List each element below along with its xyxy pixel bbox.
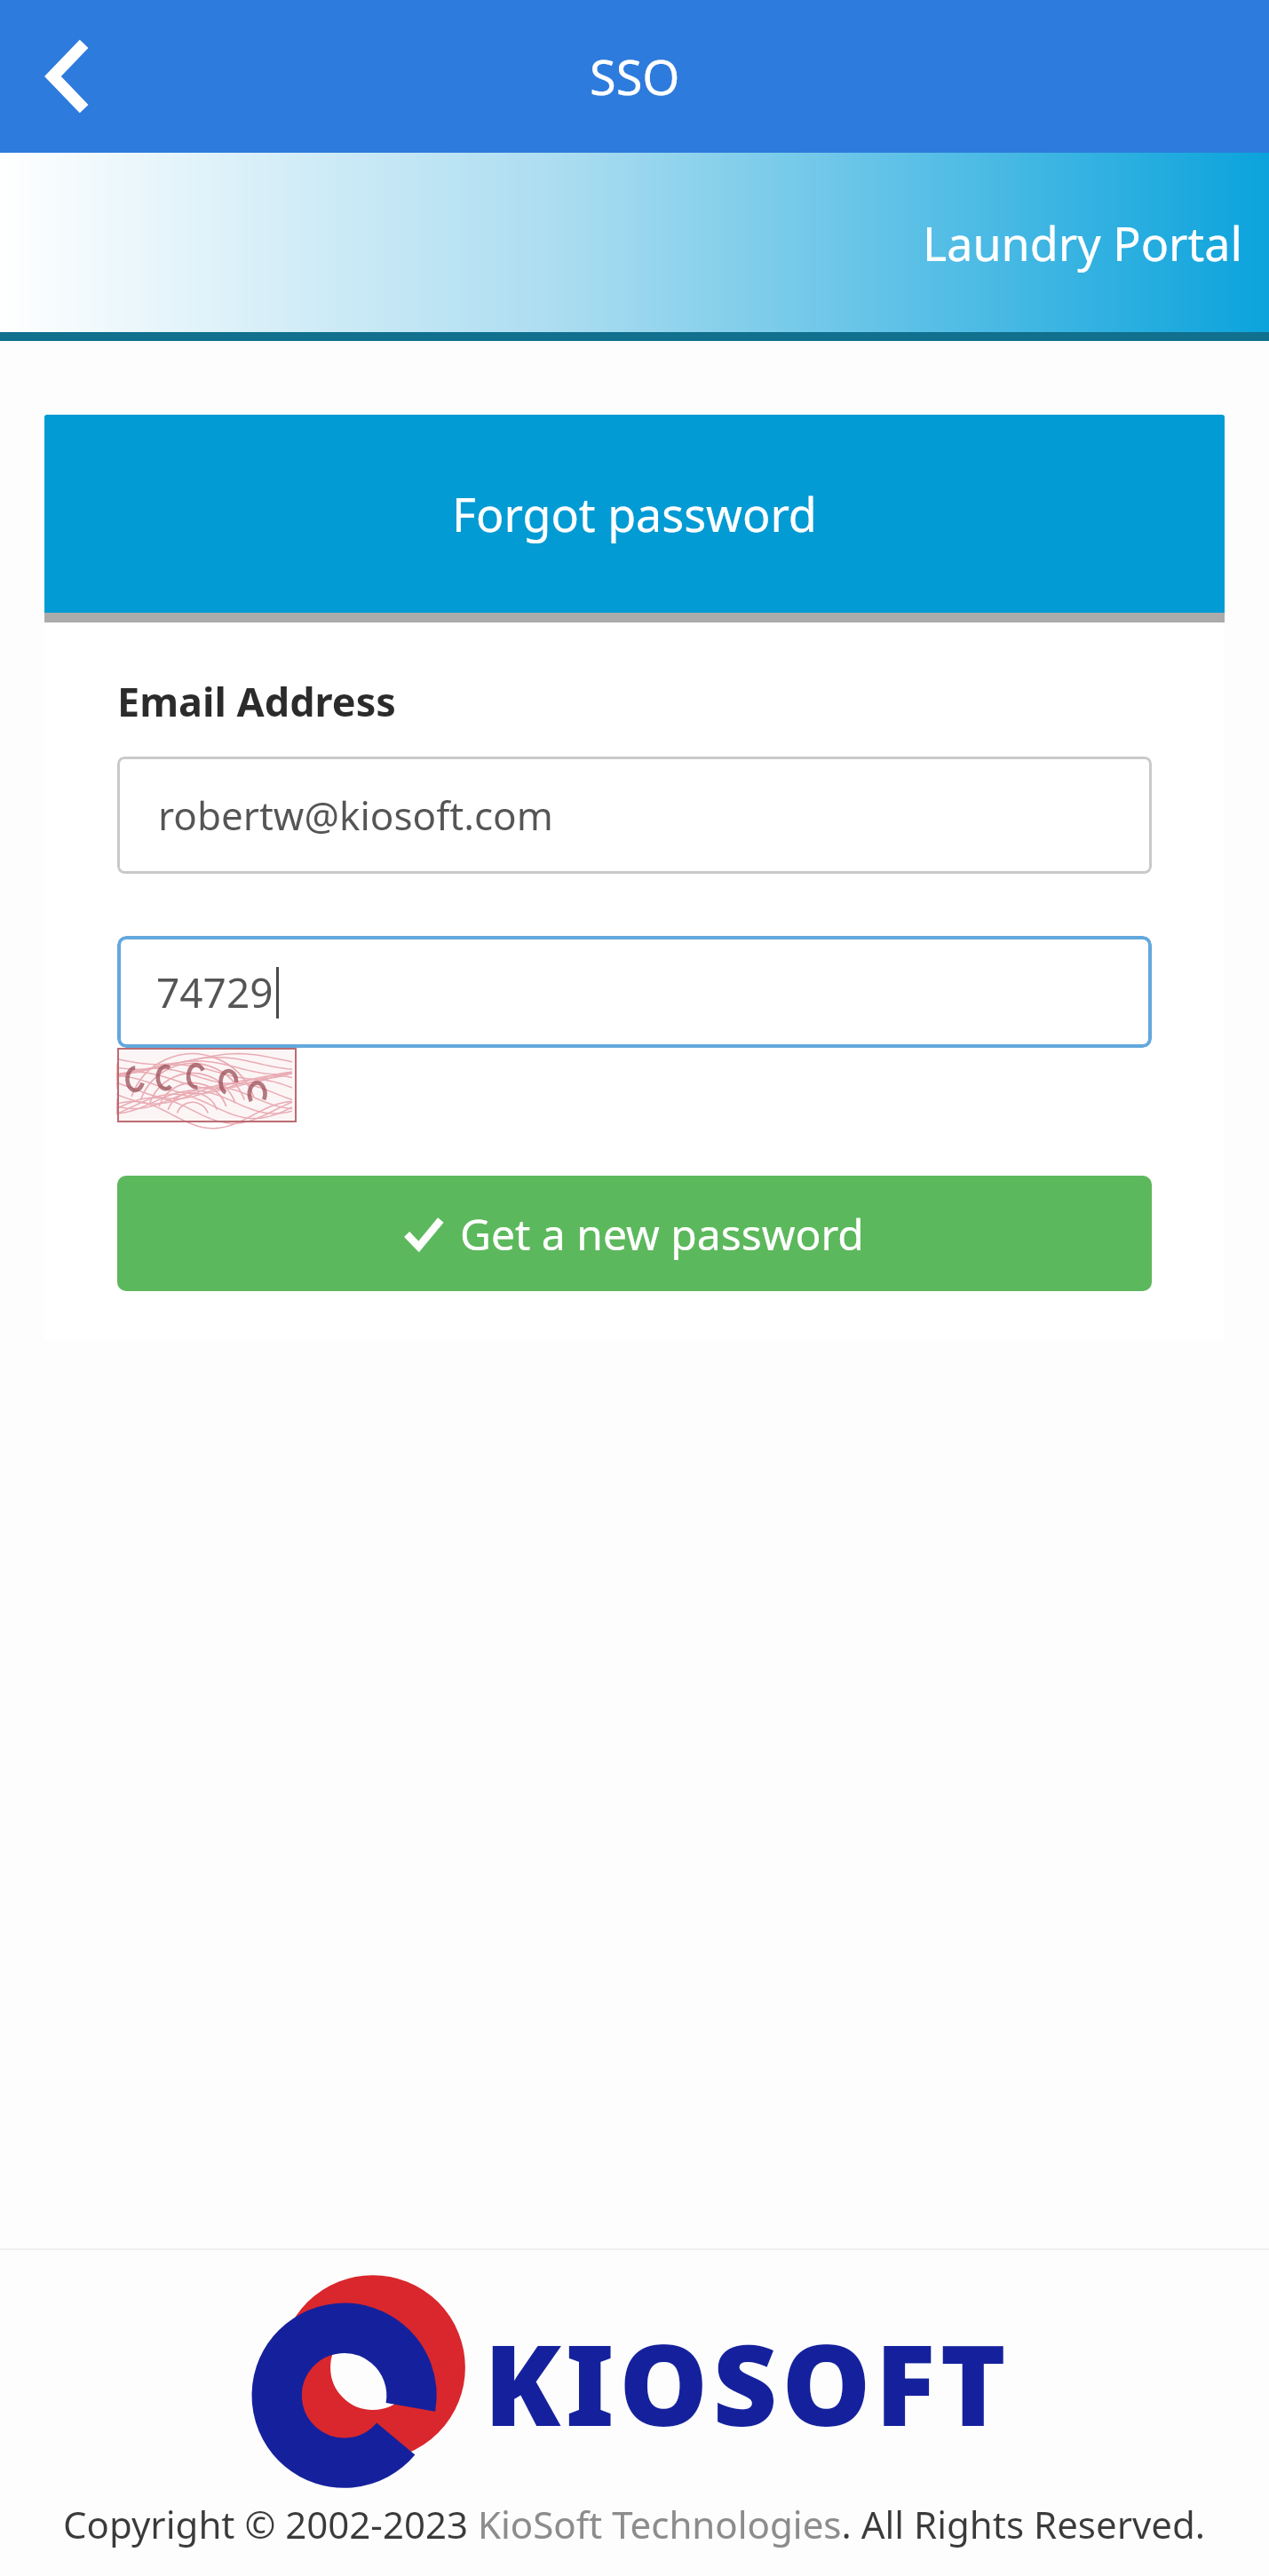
staticText: robertw@kiosoft.com xyxy=(158,789,553,842)
staticText: Copyright © 2002-2023 KioSoft Technologi… xyxy=(63,2499,1206,2549)
button[interactable]: robertw@kiosoft.com xyxy=(117,757,1152,874)
staticText: SSO xyxy=(590,44,680,109)
button[interactable]: Back xyxy=(14,19,121,134)
staticText: Email Address xyxy=(117,674,396,728)
button[interactable]: Get a new password xyxy=(117,1176,1152,1291)
staticText: Get a new password xyxy=(460,1205,864,1263)
staticText: Forgot password xyxy=(452,482,817,545)
staticText: Laundry Portal xyxy=(923,211,1242,274)
button[interactable]: 74729 xyxy=(117,936,1152,1048)
staticText: KIOSOFT xyxy=(484,2306,1011,2459)
staticText: 74729 xyxy=(156,964,274,1020)
